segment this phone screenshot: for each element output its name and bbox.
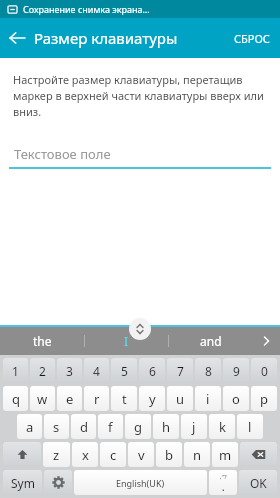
button[interactable]: Back [0,21,34,55]
button[interactable]: 4 [84,358,109,383]
staticText: v [138,446,145,464]
staticText: d [80,418,88,436]
button[interactable]: l [237,414,263,439]
button[interactable]: q [3,386,28,411]
button[interactable]: Текстовое поле [11,141,269,167]
staticText: x [82,446,89,464]
staticText: Сохранение снимка экрана… [23,3,150,15]
staticText: 9 [233,363,240,379]
staticText: and [200,333,222,349]
button[interactable]: Punctuation [209,470,237,495]
staticText: 1 [12,363,19,379]
button[interactable]: Resize keyboard [129,318,151,340]
staticText: u [176,390,185,408]
button[interactable]: p [251,386,277,411]
button[interactable]: 1 [3,358,28,383]
staticText: b [165,446,173,464]
staticText: OK [250,475,267,491]
staticText: 5 [121,363,128,379]
staticText: ,"? [220,473,227,481]
button[interactable]: 6 [139,358,165,383]
button[interactable]: Backspace [240,442,277,467]
staticText: I [124,333,129,349]
button[interactable]: h [153,414,179,439]
button[interactable]: w [30,386,55,411]
staticText: 6 [149,363,156,379]
button[interactable]: d [71,414,96,439]
staticText: y [149,390,156,408]
button[interactable]: and [169,327,252,355]
staticText: m [219,446,232,464]
staticText: n [193,446,202,464]
staticText: 0 [261,363,268,379]
staticText: 7 [177,363,184,379]
staticText: a [26,418,34,436]
button[interactable]: I [85,327,168,355]
staticText: k [219,418,226,436]
staticText: z [53,446,60,464]
button[interactable]: r [84,386,109,411]
staticText: 3 [66,363,73,379]
button[interactable]: j [181,414,207,439]
button[interactable]: 3 [57,358,82,383]
staticText: English(UK) [116,477,165,489]
staticText: Настройте размер клавиатуры, перетащив м… [13,72,267,119]
staticText: j [192,418,196,436]
button[interactable]: c [100,442,126,467]
button[interactable]: m [212,442,238,467]
button[interactable]: f [98,414,123,439]
button[interactable]: 5 [111,358,137,383]
staticText: f [108,418,113,436]
button[interactable]: e [57,386,82,411]
staticText: the [33,333,52,349]
button[interactable]: z [43,442,70,467]
staticText: i [206,390,210,408]
button[interactable]: Shift [3,442,41,467]
staticText: Sym [11,475,35,491]
button[interactable]: v [128,442,154,467]
button[interactable]: 7 [167,358,193,383]
staticText: p [260,390,268,408]
button[interactable]: 0 [251,358,277,383]
button[interactable]: 8 [195,358,221,383]
staticText: w [37,390,48,408]
staticText: Текстовое поле [14,145,111,163]
button[interactable]: the [0,327,84,355]
button[interactable]: t [111,386,137,411]
button[interactable]: b [156,442,182,467]
staticText: g [134,418,142,436]
button[interactable]: a [17,414,42,439]
staticText: r [94,390,100,408]
staticText: c [110,446,117,464]
button[interactable]: i [195,386,221,411]
button[interactable]: 2 [30,358,55,383]
staticText: q [12,390,20,408]
button[interactable]: x [72,442,98,467]
staticText: 2 [39,363,46,379]
staticText: e [66,390,74,408]
staticText: s [53,418,60,436]
button[interactable]: y [139,386,165,411]
staticText: o [232,390,240,408]
staticText: 8 [205,363,212,379]
staticText: h [162,418,171,436]
staticText: t [122,390,127,408]
button[interactable]: English(UK) [74,470,207,495]
button[interactable]: k [209,414,235,439]
staticText: . [222,481,225,493]
button[interactable]: o [223,386,249,411]
staticText: СБРОС [234,31,270,46]
button[interactable]: СБРОС [224,18,280,58]
button[interactable]: n [184,442,210,467]
button[interactable]: Settings [44,470,72,495]
staticText: l [248,418,252,436]
button[interactable]: Sym [3,470,42,495]
button[interactable]: u [167,386,193,411]
staticText: Размер клавиатуры [34,28,178,48]
button[interactable]: s [44,414,69,439]
staticText: 4 [93,363,100,379]
button[interactable]: 9 [223,358,249,383]
button[interactable]: g [125,414,151,439]
button[interactable]: OK [239,470,277,495]
button[interactable]: More suggestions [252,327,280,355]
